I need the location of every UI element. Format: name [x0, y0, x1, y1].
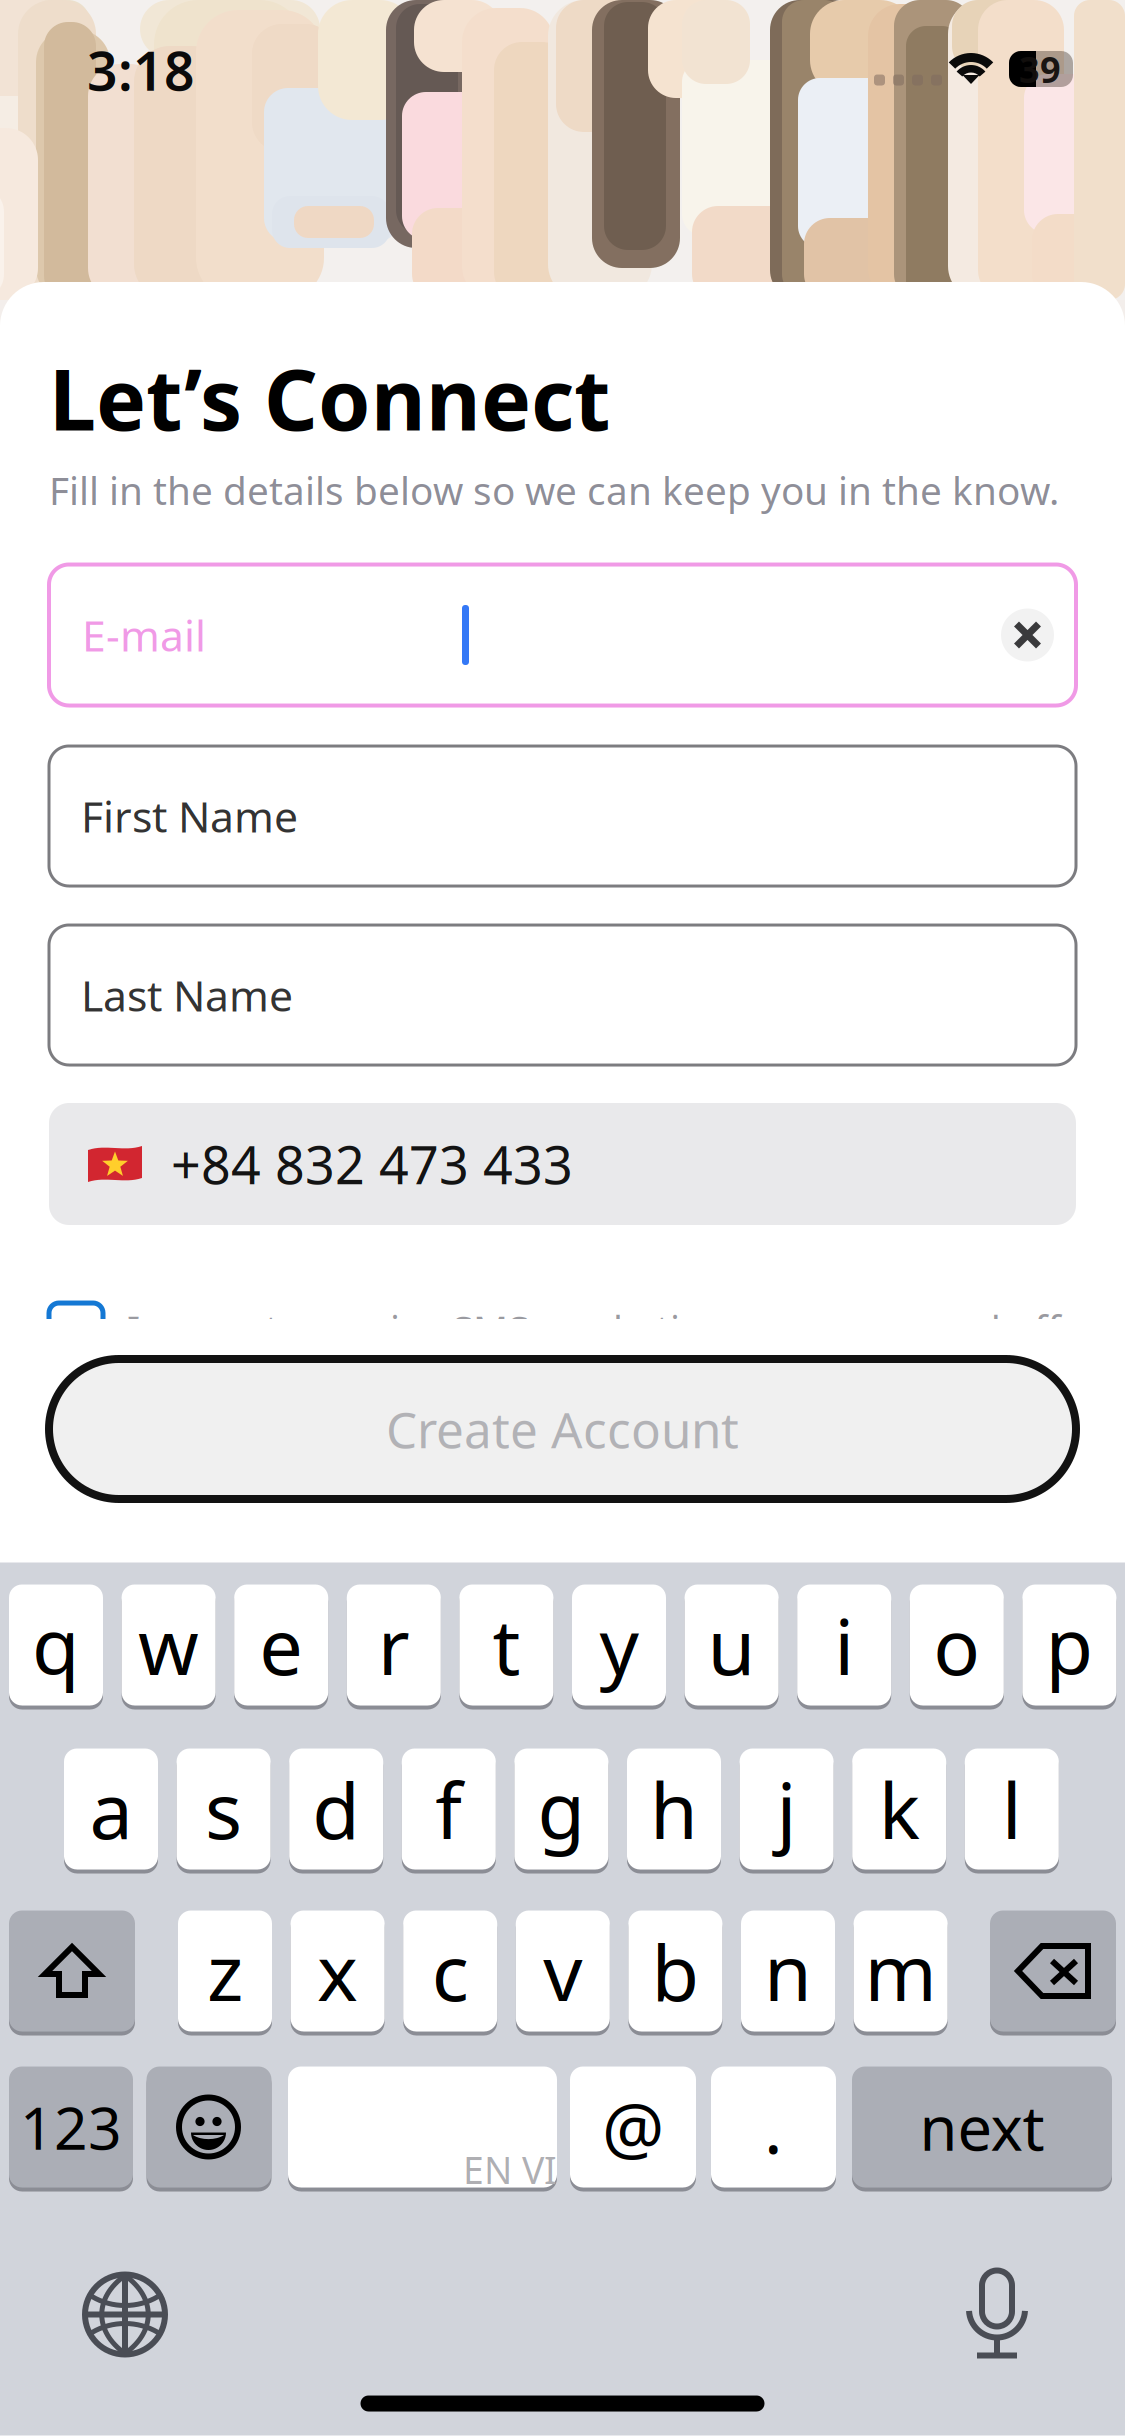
button[interactable]: f: [402, 1748, 496, 1874]
button[interactable]: j: [740, 1748, 834, 1874]
button[interactable]: s: [177, 1748, 271, 1874]
button[interactable]: t: [459, 1584, 553, 1710]
staticText: 3:18: [87, 35, 195, 105]
button[interactable]: Clear text: [1001, 608, 1054, 661]
button[interactable]: i: [797, 1584, 891, 1710]
button[interactable]: b: [628, 1910, 722, 2036]
button[interactable]: r: [347, 1584, 441, 1710]
button[interactable]: I agree to receive SMS marketing message…: [0, 1303, 1125, 1363]
staticText: +84 832 473 433: [171, 1129, 573, 1199]
button[interactable]: k: [852, 1748, 946, 1874]
staticText: 39: [1019, 45, 1061, 93]
button[interactable]: Delete: [990, 1910, 1116, 2036]
staticText: 123: [20, 2088, 122, 2166]
button[interactable]: x: [291, 1910, 385, 2036]
staticText: x: [317, 1920, 358, 2022]
staticText: i: [834, 1594, 854, 1696]
staticText: w: [138, 1594, 199, 1696]
staticText: r: [378, 1594, 410, 1696]
staticText: u: [708, 1594, 756, 1696]
button[interactable]: w: [122, 1584, 216, 1710]
button[interactable]: Emoji: [146, 2066, 271, 2192]
button[interactable]: 123: [9, 2066, 133, 2192]
button[interactable]: Create Account: [49, 1359, 1076, 1499]
staticText: o: [933, 1594, 980, 1696]
button[interactable]: a: [64, 1748, 158, 1874]
staticText: f: [435, 1758, 462, 1860]
button[interactable]: Dictation: [965, 2267, 1029, 2361]
staticText: First Name: [81, 788, 298, 844]
staticText: d: [312, 1758, 360, 1860]
staticText: a: [89, 1758, 132, 1860]
button[interactable]: u: [685, 1584, 779, 1710]
staticText: y: [599, 1594, 638, 1696]
staticText: Last Name: [81, 967, 293, 1023]
staticText: l: [1002, 1758, 1022, 1860]
button[interactable]: d: [289, 1748, 383, 1874]
staticText: n: [764, 1920, 812, 2022]
staticText: Fill in the details below so we can keep…: [49, 464, 1059, 516]
staticText: I agree to receive SMS marketing message…: [127, 1303, 1093, 1354]
staticText: c: [432, 1920, 469, 2022]
staticText: e: [259, 1594, 303, 1696]
button[interactable]: .: [711, 2066, 836, 2192]
button[interactable]: @: [570, 2066, 696, 2192]
staticText: @: [602, 2081, 664, 2173]
staticText: q: [32, 1594, 80, 1696]
staticText: .: [764, 2081, 783, 2173]
button[interactable]: g: [514, 1748, 608, 1874]
button[interactable]: Last Name: [49, 925, 1076, 1065]
button[interactable]: n: [741, 1910, 835, 2036]
button[interactable]: o: [910, 1584, 1004, 1710]
staticText: z: [207, 1920, 243, 2022]
button[interactable]: +84 832 473 433: [49, 1103, 1076, 1225]
staticText: next: [919, 2086, 1044, 2168]
button[interactable]: z: [178, 1910, 272, 2036]
staticText: EN VI: [463, 2145, 557, 2194]
button[interactable]: First Name: [49, 746, 1076, 886]
staticText: E-mail: [82, 607, 206, 663]
button[interactable]: e: [234, 1584, 328, 1710]
staticText: b: [651, 1920, 699, 2022]
button[interactable]: Change keyboard: [85, 2274, 165, 2354]
button[interactable]: Shift: [9, 1910, 135, 2036]
button[interactable]: next: [852, 2066, 1112, 2192]
staticText: s: [205, 1758, 242, 1860]
button[interactable]: p: [1022, 1584, 1116, 1710]
button[interactable]: l: [965, 1748, 1059, 1874]
button[interactable]: m: [854, 1910, 948, 2036]
staticText: k: [879, 1758, 920, 1860]
button[interactable]: E-mail: [49, 564, 1076, 705]
staticText: v: [543, 1920, 582, 2022]
staticText: g: [537, 1758, 585, 1860]
button[interactable]: h: [627, 1748, 721, 1874]
staticText: Let’s Connect: [49, 342, 610, 454]
staticText: h: [650, 1758, 698, 1860]
staticText: j: [777, 1758, 797, 1860]
button[interactable]: Space: [288, 2066, 557, 2192]
staticText: t: [492, 1594, 520, 1696]
button[interactable]: q: [9, 1584, 103, 1710]
staticText: m: [865, 1920, 937, 2022]
staticText: Create Account: [386, 1396, 739, 1462]
staticText: p: [1045, 1594, 1093, 1696]
button[interactable]: y: [572, 1584, 666, 1710]
button[interactable]: v: [516, 1910, 610, 2036]
button[interactable]: c: [403, 1910, 497, 2036]
